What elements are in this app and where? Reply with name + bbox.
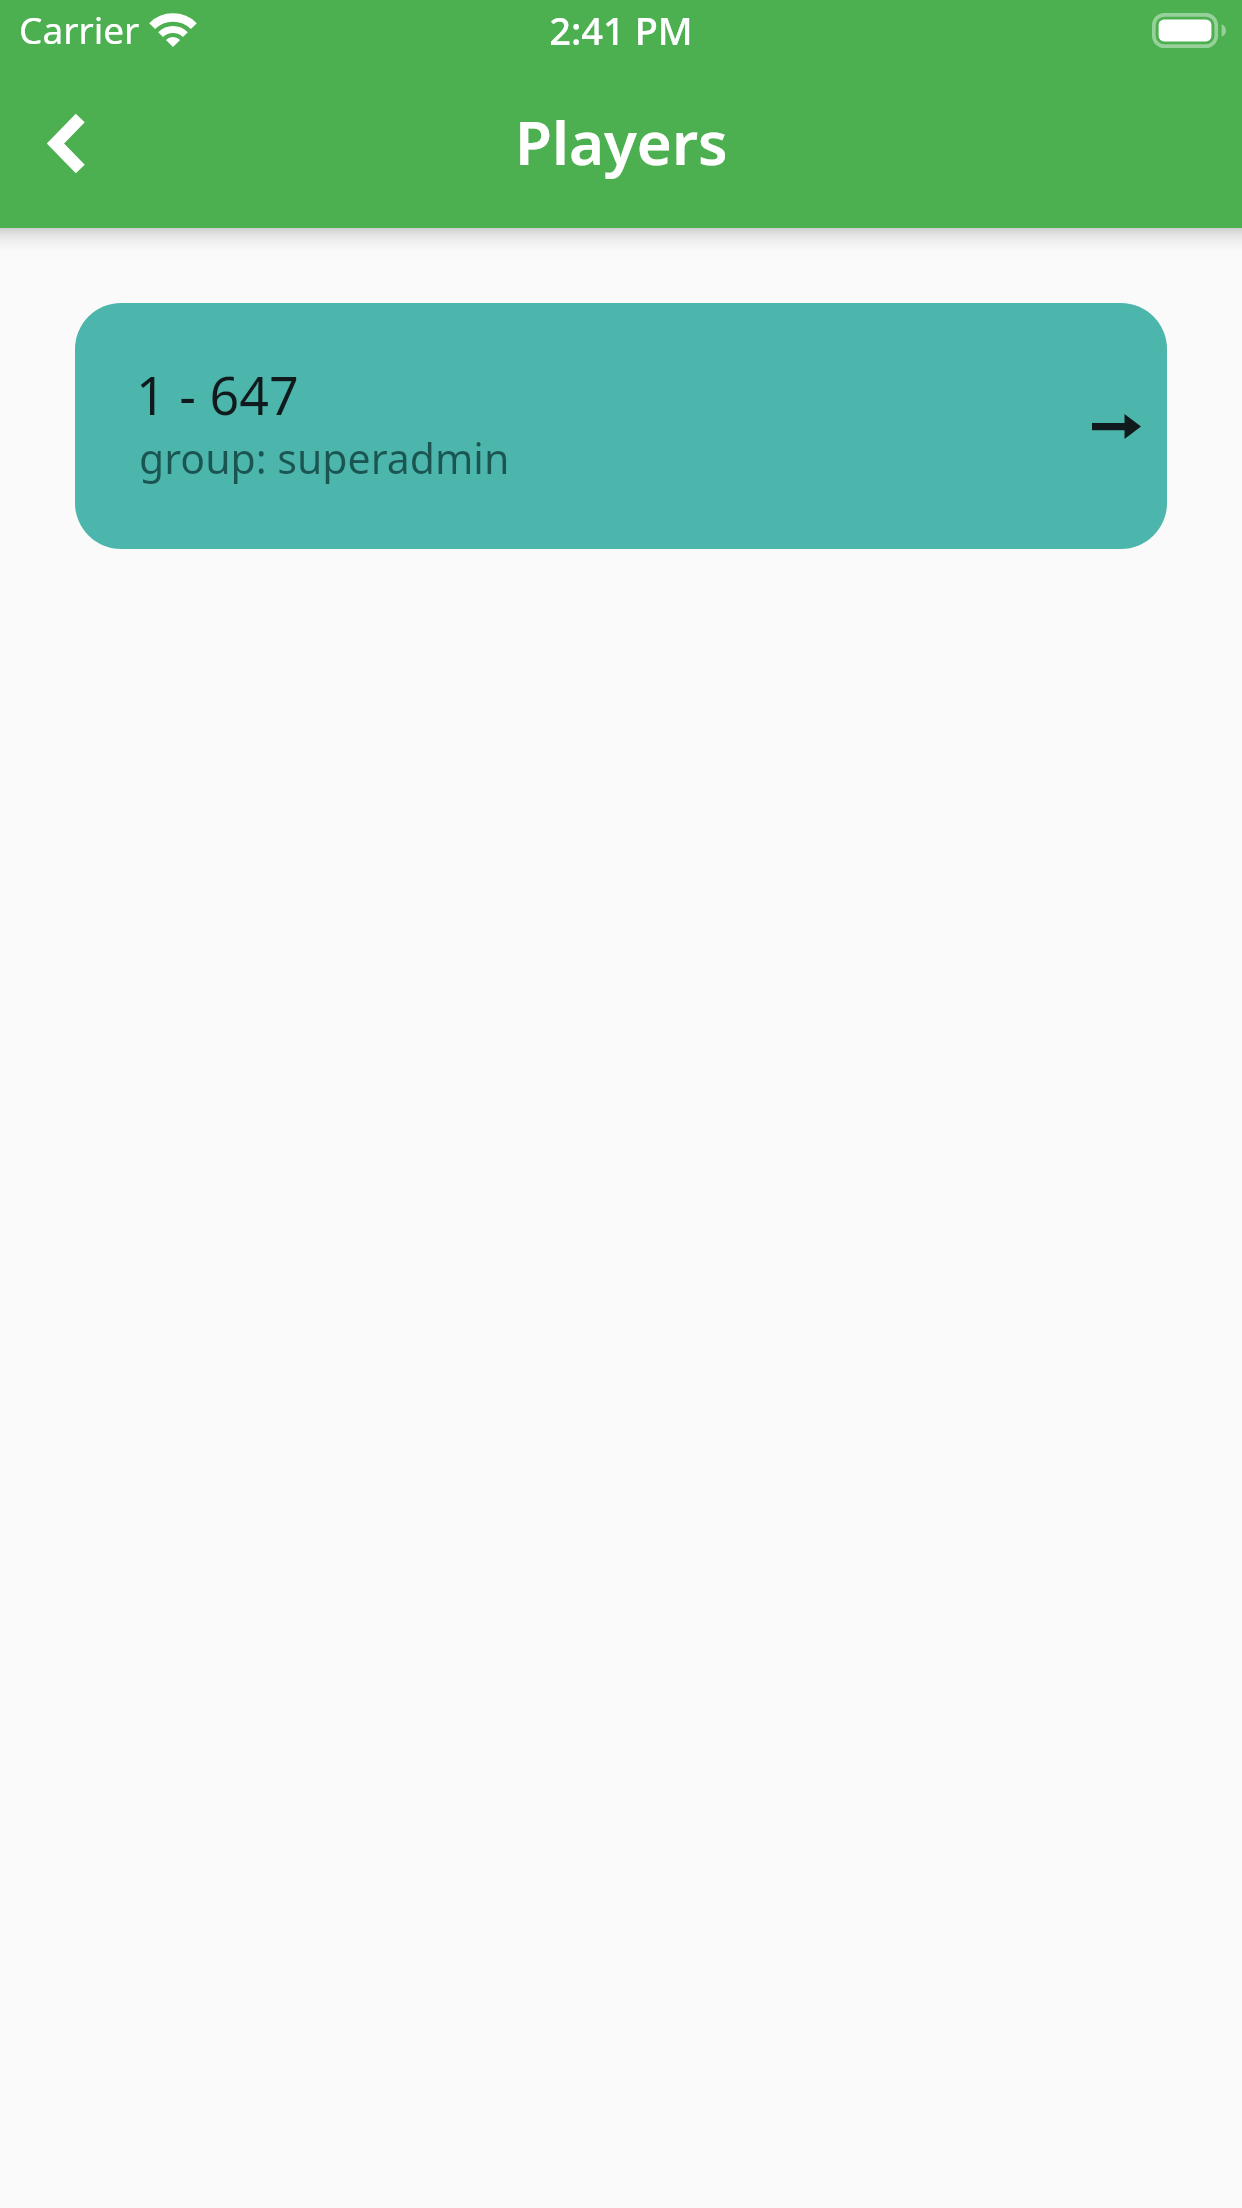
staticText: 1 - 647	[136, 359, 299, 430]
other: Open	[1092, 414, 1141, 439]
staticText: 2:41 PM	[549, 4, 693, 56]
button[interactable]: 1 - 647	[75, 303, 1167, 549]
staticText: Carrier	[19, 4, 140, 54]
staticText: group: superadmin	[139, 430, 510, 486]
button[interactable]: Back	[12, 88, 122, 198]
staticText: Players	[515, 101, 728, 183]
